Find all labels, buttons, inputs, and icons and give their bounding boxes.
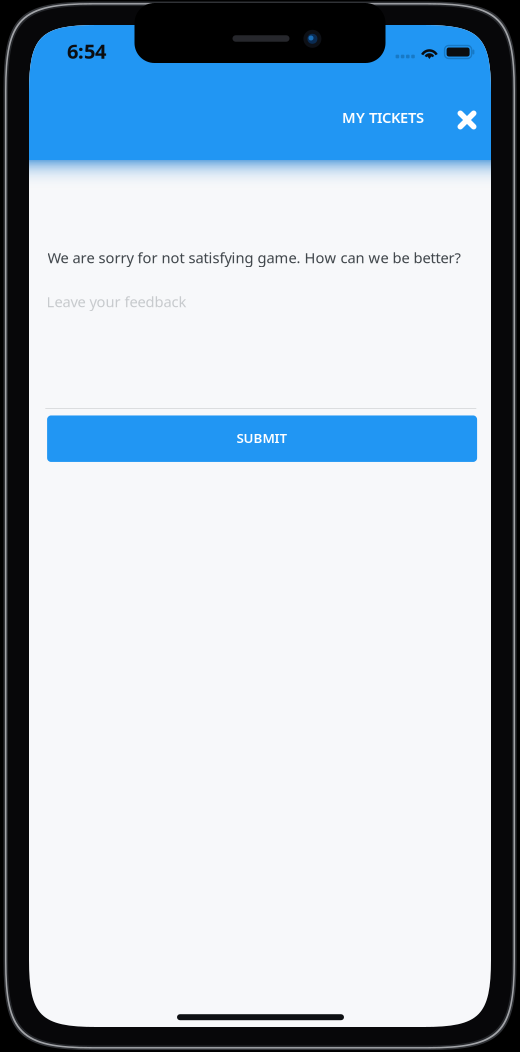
staticText: MY TICKETS: [342, 108, 424, 127]
button[interactable]: SUBMIT: [47, 415, 477, 462]
staticText: Leave your feedback: [46, 292, 186, 311]
button[interactable]: MY TICKETS: [335, 95, 431, 139]
staticText: SUBMIT: [237, 429, 288, 447]
staticText: 6:54: [67, 38, 106, 64]
button[interactable]: Close: [444, 98, 490, 142]
staticText: We are sorry for not satisfying game. Ho…: [47, 248, 460, 267]
